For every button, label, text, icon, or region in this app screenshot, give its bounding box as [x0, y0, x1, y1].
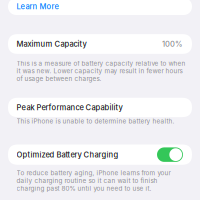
staticText: Peak Performance Capability: [16, 103, 122, 112]
staticText: Maximum Capacity: [16, 39, 86, 49]
staticText: Optimized Battery Charging: [16, 150, 118, 159]
staticText: 100%: [162, 39, 183, 49]
staticText: This is a measure of battery capacity re…: [16, 59, 185, 82]
staticText: This iPhone is unable to determine batte…: [16, 117, 174, 125]
staticText: Learn More: [16, 2, 58, 11]
staticText: To reduce battery aging, iPhone learns f…: [16, 169, 170, 192]
button[interactable]: Optimized Battery Charging: [157, 147, 183, 162]
button[interactable]: Learn More: [8, 0, 192, 15]
